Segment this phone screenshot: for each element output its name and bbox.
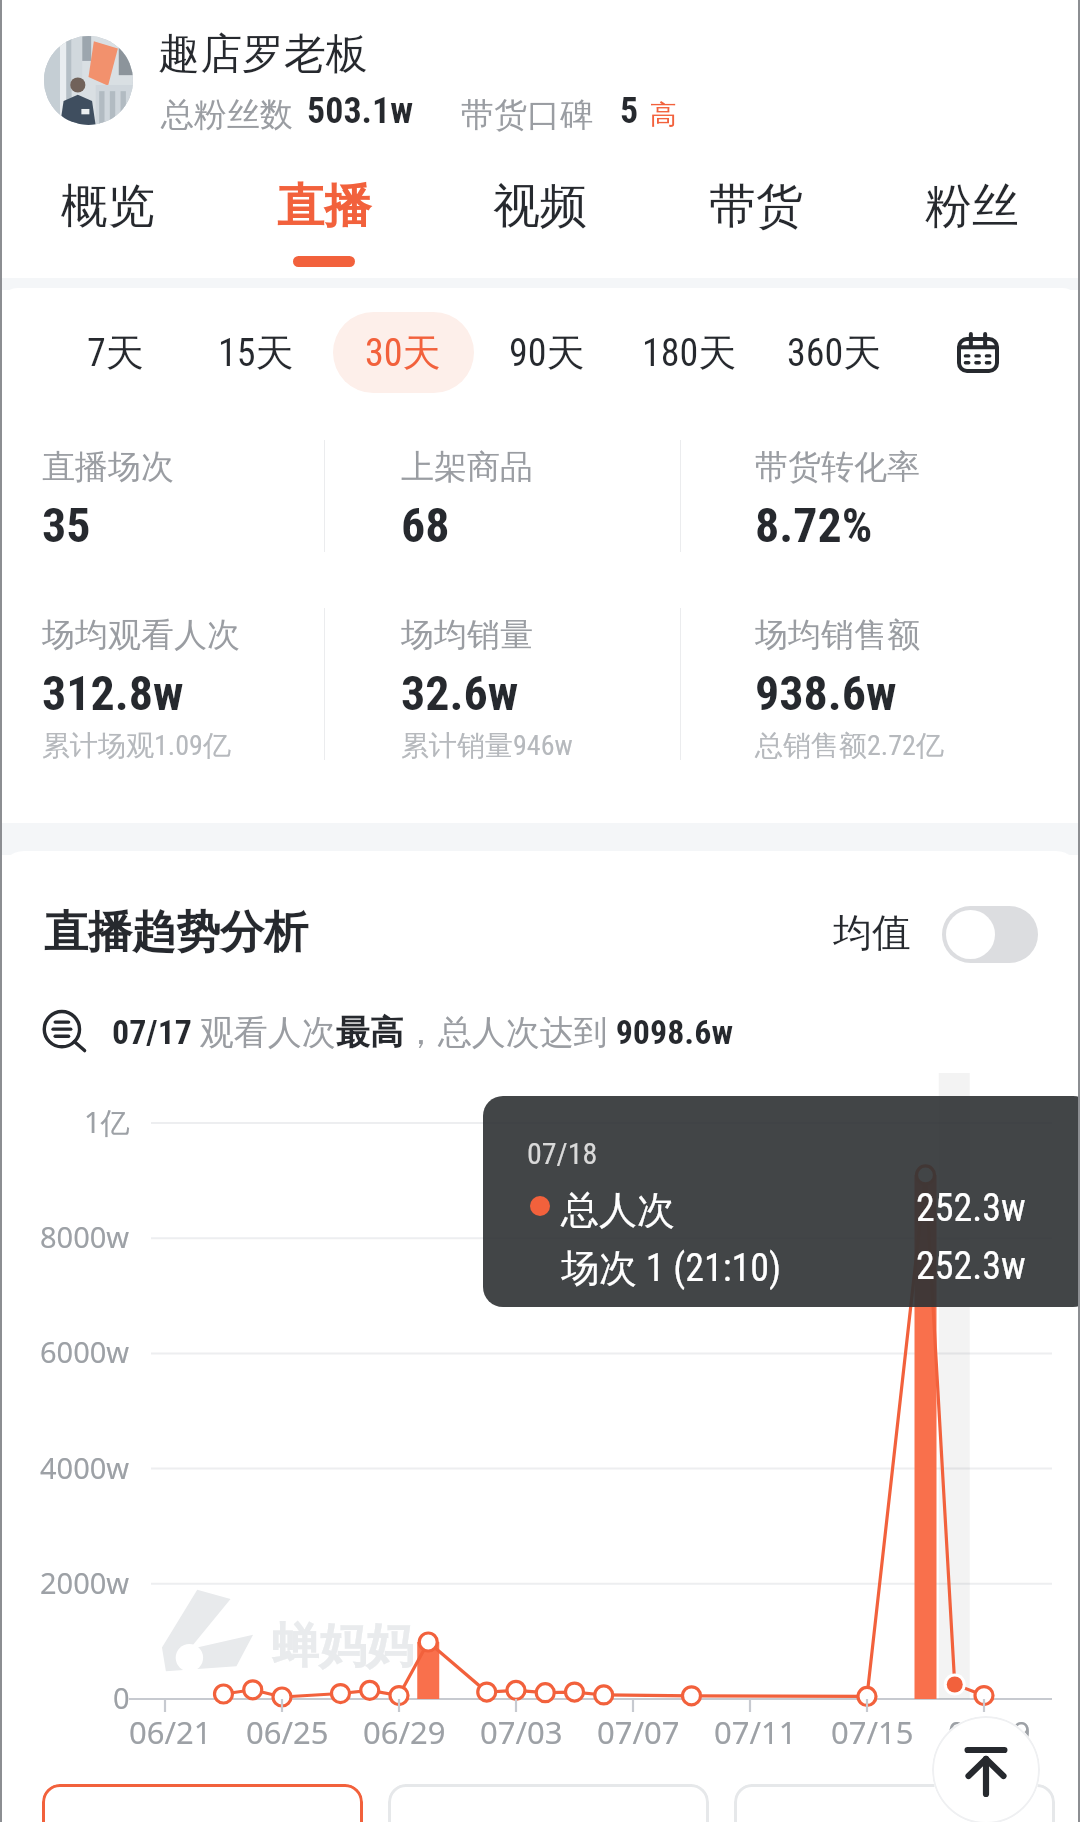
button[interactable]: 360天 xyxy=(774,312,894,393)
staticText: 总粉丝数 xyxy=(161,94,293,136)
staticText: 高 xyxy=(650,98,677,132)
button[interactable]: 直播 xyxy=(216,160,432,278)
button[interactable]: 15天 xyxy=(196,312,316,393)
staticText: 06/21 xyxy=(129,1711,212,1753)
button[interactable]: Choose date range xyxy=(940,320,1016,386)
staticText: 07/15 xyxy=(831,1711,914,1753)
staticText: 场均销量 xyxy=(401,614,533,656)
button[interactable]: 7天 xyxy=(55,312,175,393)
staticText: 趣店罗老板 xyxy=(158,28,368,81)
staticText: 32.6w xyxy=(401,665,519,721)
button[interactable]: 观看人次 xyxy=(42,1784,363,1822)
staticText: 4000w xyxy=(40,1448,130,1487)
button[interactable]: 销量 xyxy=(734,1784,1055,1822)
button[interactable]: Scroll to top xyxy=(932,1716,1040,1822)
button[interactable]: 概览 xyxy=(0,160,216,278)
staticText: 0 xyxy=(113,1678,130,1717)
staticText: 07/19 xyxy=(948,1711,1031,1753)
staticText: 2000w xyxy=(40,1563,130,1602)
staticText: 07/07 xyxy=(597,1711,680,1753)
staticText: 直播场次 xyxy=(42,446,174,488)
staticText: 938.6w xyxy=(755,665,897,721)
staticText: 180天 xyxy=(642,329,737,377)
staticText: 5 xyxy=(620,90,639,132)
staticText: 直播趋势分析 xyxy=(44,905,308,960)
staticText: 总销售额2.72亿 xyxy=(755,728,944,763)
staticText: 6000w xyxy=(40,1332,130,1371)
staticText: 直播 xyxy=(277,177,371,236)
staticText: 8.72% xyxy=(755,497,873,553)
staticText: 带货转化率 xyxy=(755,446,920,488)
button[interactable]: 180天 xyxy=(629,312,749,393)
staticText: 07/17 观看人次最高，总人次达到 9098.6w xyxy=(112,1011,733,1054)
staticText: 场均观看人次 xyxy=(42,614,240,656)
button[interactable]: 90天 xyxy=(487,312,607,393)
staticText: 07/18 xyxy=(527,1136,598,1171)
staticText: 06/29 xyxy=(363,1711,446,1753)
staticText: 503.1w xyxy=(307,90,414,132)
staticText: 312.8w xyxy=(42,665,184,721)
staticText: 带货口碑 xyxy=(461,94,593,136)
staticText: 7天 xyxy=(87,329,144,377)
button[interactable]: 带货 xyxy=(648,160,864,278)
staticText: 35 xyxy=(42,497,91,553)
staticText: 360天 xyxy=(787,329,882,377)
staticText: 68 xyxy=(401,497,450,553)
button[interactable]: 视频 xyxy=(432,160,648,278)
staticText: 15天 xyxy=(218,329,294,377)
staticText: 粉丝 xyxy=(925,177,1019,236)
staticText: 30天 xyxy=(365,329,441,377)
button[interactable]: Average toggle xyxy=(942,906,1038,963)
staticText: 06/25 xyxy=(246,1711,329,1753)
staticText: 8000w xyxy=(40,1217,130,1256)
staticText: 累计场观1.09亿 xyxy=(42,728,231,763)
staticText: 上架商品 xyxy=(401,446,533,488)
staticText: 1亿 xyxy=(84,1102,130,1142)
staticText: 总人次 xyxy=(561,1186,675,1234)
staticText: 场次 1 (21:10) xyxy=(561,1244,782,1292)
button[interactable]: 粉丝 xyxy=(864,160,1080,278)
staticText: 场均销售额 xyxy=(755,614,920,656)
staticText: 07/11 xyxy=(714,1711,797,1753)
staticText: 视频 xyxy=(493,177,587,236)
staticText: 概览 xyxy=(61,177,155,236)
staticText: 07/03 xyxy=(480,1711,563,1753)
staticText: 252.3w xyxy=(916,1186,1026,1231)
staticText: 均值 xyxy=(833,908,911,957)
staticText: 累计销量946w xyxy=(401,728,573,763)
button[interactable] xyxy=(333,312,474,393)
button[interactable]: 销售额 xyxy=(388,1784,709,1822)
staticText: 蝉妈妈 xyxy=(272,1617,413,1676)
staticText: 252.3w xyxy=(916,1244,1026,1289)
staticText: 90天 xyxy=(509,329,585,377)
staticText: 带货 xyxy=(709,177,803,236)
